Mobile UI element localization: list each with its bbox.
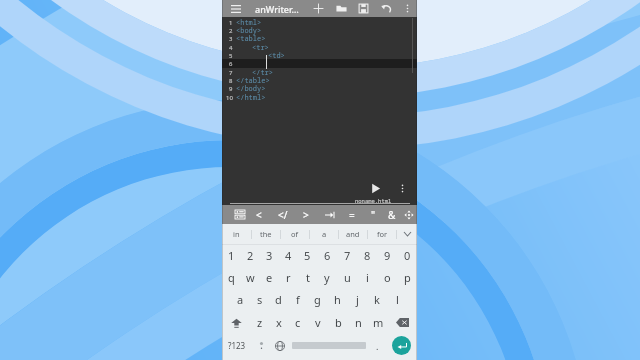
- button[interactable]: .: [369, 334, 386, 357]
- staticText: &: [388, 208, 396, 222]
- staticText: </html>: [236, 93, 266, 102]
- staticText: j: [356, 292, 359, 307]
- staticText: 1: [228, 248, 235, 263]
- button[interactable]: a: [231, 288, 250, 311]
- button[interactable]: ?123: [222, 334, 252, 357]
- staticText: 10: [226, 94, 233, 102]
- staticText: 7: [229, 69, 233, 77]
- staticText: w: [246, 270, 255, 285]
- button[interactable]: Comma: [252, 334, 270, 357]
- button[interactable]: More options: [398, 0, 416, 17]
- staticText: 6: [324, 248, 331, 263]
- staticText: l: [396, 292, 399, 307]
- button[interactable]: k: [367, 288, 387, 311]
- button[interactable]: >: [296, 205, 316, 224]
- button[interactable]: 2: [241, 245, 260, 266]
- button[interactable]: n: [348, 311, 368, 334]
- staticText: p: [404, 270, 411, 285]
- button[interactable]: Run: [366, 179, 384, 197]
- button[interactable]: Add file: [309, 0, 327, 17]
- staticText: <table>: [236, 34, 266, 43]
- button[interactable]: s: [250, 288, 269, 311]
- button[interactable]: 1: [222, 245, 241, 266]
- button[interactable]: 8: [357, 245, 377, 266]
- staticText: >: [303, 208, 309, 222]
- staticText: i: [366, 270, 369, 285]
- button[interactable]: q: [222, 266, 241, 288]
- button[interactable]: u: [337, 266, 357, 288]
- button[interactable]: c: [288, 311, 308, 334]
- staticText: </tr>: [252, 68, 273, 77]
- button[interactable]: More suggestions: [397, 224, 417, 244]
- button[interactable]: of: [281, 224, 309, 244]
- staticText: r: [286, 270, 291, 285]
- button[interactable]: Backspace: [388, 311, 417, 334]
- staticText: </: [278, 208, 288, 222]
- button[interactable]: 6: [317, 245, 337, 266]
- button[interactable]: j: [347, 288, 367, 311]
- button[interactable]: 7: [337, 245, 357, 266]
- button[interactable]: and: [339, 224, 367, 244]
- button[interactable]: l: [387, 288, 407, 311]
- button[interactable]: </: [273, 205, 293, 224]
- button[interactable]: ": [363, 205, 383, 224]
- staticText: <: [256, 208, 262, 222]
- button[interactable]: 9: [377, 245, 397, 266]
- staticText: h: [334, 292, 341, 307]
- button[interactable]: t: [298, 266, 317, 288]
- button[interactable]: e: [260, 266, 279, 288]
- button[interactable]: x: [269, 311, 288, 334]
- button[interactable]: z: [250, 311, 269, 334]
- button[interactable]: Move cursor: [399, 205, 418, 224]
- button[interactable]: for: [368, 224, 396, 244]
- button[interactable]: i: [357, 266, 377, 288]
- staticText: v: [315, 315, 321, 330]
- button[interactable]: 5: [298, 245, 317, 266]
- button[interactable]: Keyboard layout: [230, 205, 249, 224]
- button[interactable]: Editor options: [393, 179, 411, 197]
- button[interactable]: f: [288, 288, 307, 311]
- button[interactable]: d: [269, 288, 288, 311]
- button[interactable]: 3: [260, 245, 279, 266]
- button[interactable]: Space: [289, 334, 369, 357]
- staticText: 9: [229, 85, 233, 93]
- staticText: 4: [285, 248, 292, 263]
- button[interactable]: <: [249, 205, 269, 224]
- button[interactable]: =: [342, 205, 362, 224]
- staticText: e: [266, 270, 273, 285]
- staticText: 0: [404, 248, 411, 263]
- button[interactable]: [320, 205, 340, 224]
- button[interactable]: &: [382, 205, 402, 224]
- staticText: for: [377, 229, 388, 239]
- button[interactable]: m: [368, 311, 388, 334]
- button[interactable]: Save: [354, 0, 372, 17]
- button[interactable]: Shift: [222, 311, 250, 334]
- button[interactable]: the: [252, 224, 280, 244]
- button[interactable]: Undo: [377, 0, 395, 17]
- button[interactable]: r: [279, 266, 298, 288]
- button[interactable]: Enter: [386, 334, 417, 357]
- button[interactable]: v: [308, 311, 328, 334]
- button[interactable]: p: [397, 266, 417, 288]
- button[interactable]: b: [328, 311, 348, 334]
- button[interactable]: Switch language: [270, 334, 289, 357]
- button[interactable]: o: [377, 266, 397, 288]
- staticText: noname.html: [355, 197, 392, 204]
- button[interactable]: g: [307, 288, 327, 311]
- staticText: 8: [364, 248, 371, 263]
- staticText: m: [373, 315, 384, 330]
- button[interactable]: Open file: [332, 0, 350, 17]
- button[interactable]: y: [317, 266, 337, 288]
- button[interactable]: a: [310, 224, 338, 244]
- button[interactable]: 4: [279, 245, 298, 266]
- button[interactable]: Navigation menu: [227, 0, 245, 17]
- staticText: of: [291, 229, 299, 239]
- button[interactable]: in: [222, 224, 251, 244]
- staticText: ": [371, 208, 376, 222]
- staticText: </body>: [236, 84, 266, 93]
- staticText: ?123: [228, 340, 246, 351]
- button[interactable]: h: [327, 288, 347, 311]
- button[interactable]: w: [241, 266, 260, 288]
- button[interactable]: 0: [397, 245, 417, 266]
- staticText: u: [344, 270, 351, 285]
